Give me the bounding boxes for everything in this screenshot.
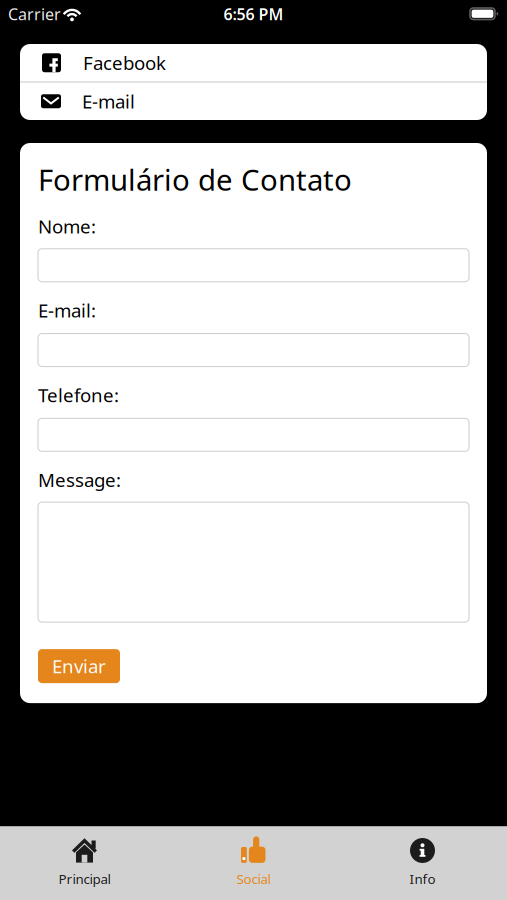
staticText: Message: [38, 467, 121, 492]
button[interactable]: Social [169, 826, 338, 900]
button[interactable]: E-mail [20, 82, 487, 120]
staticText: Facebook [83, 50, 166, 75]
button[interactable]: Enviar [38, 649, 120, 683]
staticText: E-mail [82, 89, 135, 114]
button[interactable]: Facebook [20, 44, 487, 81]
button[interactable]: Info [338, 826, 507, 900]
staticText: E-mail: [38, 298, 96, 322]
staticText: Social [236, 870, 270, 888]
staticText: Formulário de Contato [38, 160, 352, 199]
staticText: Enviar [52, 654, 106, 678]
staticText: Telefone: [38, 382, 119, 407]
button[interactable]: Principal [0, 826, 169, 900]
staticText: Nome: [38, 214, 96, 239]
staticText: 6:56 PM [223, 3, 283, 25]
staticText: Info [409, 870, 435, 888]
staticText: Carrier [8, 3, 61, 25]
staticText: Principal [58, 870, 110, 888]
